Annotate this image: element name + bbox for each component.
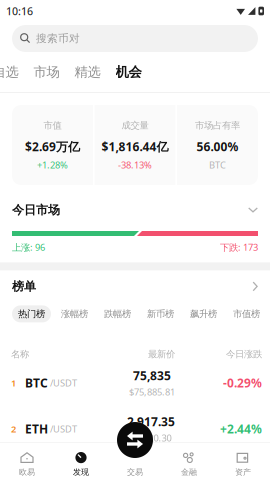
staticText: 2,917.35 [127,414,175,430]
staticText: 下跌: 173 [220,241,258,253]
staticText: +1.05% [220,467,262,480]
staticText: 欧易 [19,467,35,477]
staticText: /USDT [48,377,77,389]
staticText: 上涨: 96 [12,241,45,253]
button[interactable]: 发现 [54,452,108,477]
button[interactable]: 1 [0,360,270,406]
staticText: 市场占有率 [195,120,240,131]
staticText: 1 [11,377,16,389]
staticText: 交易 [127,467,143,477]
staticText: 精选 [74,64,100,80]
staticText: +1.28% [37,159,68,171]
button[interactable]: 交易 [117,422,153,458]
staticText: 名称 [11,348,29,360]
staticText: $2.69万亿 [25,138,80,154]
staticText: 自选 [0,64,18,80]
staticText: /USDT [48,469,77,480]
button[interactable]: 飙升榜 [184,305,223,322]
staticText: 搜索币对 [36,32,80,45]
staticText: 热门榜 [18,308,45,320]
staticText: 金融 [181,467,197,477]
staticText: 75,835 [133,368,171,384]
button[interactable]: 跌幅榜 [98,305,137,322]
button[interactable]: 榜单 [0,270,270,293]
staticText: +2.44% [220,421,262,437]
staticText: 资产 [235,467,251,477]
button[interactable]: 市值榜 [227,305,266,322]
staticText: ETH [25,421,48,437]
staticText: 今日市场 [12,203,60,217]
staticText: -38.13% [118,159,152,171]
button[interactable]: 交易 [108,452,162,477]
staticText: 168.42 [137,460,175,476]
button[interactable]: 热门榜 [12,305,51,322]
staticText: $75,885.81 [129,386,175,398]
staticText: SOL [25,467,48,480]
button[interactable]: 自选 [0,64,19,80]
staticText: BTC [209,159,226,171]
button[interactable]: 精选 [60,64,101,80]
staticText: 市值榜 [233,308,260,320]
staticText: $1,816.44亿 [101,138,168,154]
button[interactable]: 搜索币对 [12,25,258,52]
staticText: $2,920.30 [130,432,171,444]
button[interactable]: 市场 [19,64,60,80]
staticText: -0.29% [223,375,262,391]
button[interactable]: 欧易 [0,452,54,477]
staticText: 今日涨跌 [226,348,262,360]
staticText: BTC [25,375,48,391]
staticText: 10:16 [6,4,33,18]
staticText: 最新价 [148,348,175,360]
staticText: 飙升榜 [190,308,217,320]
staticText: 2 [11,423,16,435]
staticText: 涨幅榜 [61,308,88,320]
staticText: 成交量 [121,120,148,131]
staticText: 机会 [115,64,141,80]
staticText: 跌幅榜 [104,308,131,320]
button[interactable]: 2 [0,406,270,452]
button[interactable]: 资产 [216,452,270,477]
staticText: 市场 [33,64,59,80]
button[interactable]: 展开今日市场 [248,207,258,213]
staticText: 新币榜 [147,308,174,320]
staticText: 56.00% [196,138,238,154]
button[interactable]: 金融 [162,452,216,477]
button[interactable]: 涨幅榜 [55,305,94,322]
staticText: 发现 [73,467,89,477]
staticText: /USDT [48,423,77,435]
button[interactable]: 新币榜 [141,305,180,322]
staticText: 市值 [43,120,61,131]
button[interactable]: 机会 [101,64,142,80]
button[interactable]: 3 [0,452,270,480]
staticText: 榜单 [12,279,36,294]
